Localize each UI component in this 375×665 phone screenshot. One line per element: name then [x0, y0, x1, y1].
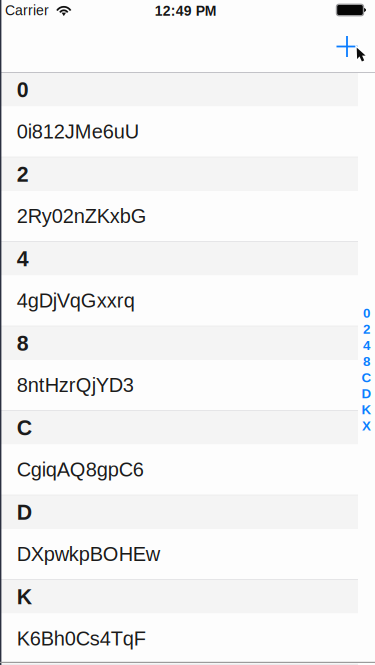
staticText: 2 [363, 322, 370, 337]
staticText: 8ntHzrQjYD3 [17, 374, 134, 396]
button[interactable]: 4gDjVqGxxrq [0, 275, 358, 326]
button[interactable]: Section index [358, 305, 375, 434]
staticText: 2 [17, 162, 29, 186]
staticText: 0 [363, 306, 370, 321]
staticText: 0 [17, 78, 29, 102]
staticText: 4 [363, 338, 370, 353]
staticText: C [361, 370, 371, 385]
staticText: K [17, 585, 32, 609]
staticText: 8 [363, 354, 370, 369]
button[interactable]: 2Ry02nZKxbG [0, 191, 358, 242]
staticText: Carrier [5, 3, 49, 18]
staticText: C [17, 416, 32, 440]
staticText: D [17, 500, 32, 524]
button[interactable]: K6Bh0Cs4TqF [0, 613, 358, 664]
staticText: 12:49 PM [155, 3, 217, 19]
button[interactable]: Add [325, 24, 369, 68]
staticText: K [361, 402, 371, 417]
staticText: X [362, 418, 371, 433]
staticText: 2Ry02nZKxbG [17, 205, 147, 227]
staticText: K6Bh0Cs4TqF [17, 627, 146, 650]
staticText: 0i812JMe6uU [17, 120, 139, 143]
staticText: 8 [17, 331, 29, 355]
button[interactable]: 0i812JMe6uU [0, 106, 358, 157]
button[interactable]: CgiqAQ8gpC6 [0, 444, 358, 495]
staticText: DXpwkpBOHEw [17, 543, 160, 565]
staticText: 4 [17, 247, 29, 271]
button[interactable]: 8ntHzrQjYD3 [0, 360, 358, 411]
staticText: D [361, 386, 371, 401]
button[interactable]: DXpwkpBOHEw [0, 529, 358, 580]
staticText: CgiqAQ8gpC6 [17, 458, 144, 481]
staticText: 4gDjVqGxxrq [17, 289, 135, 312]
